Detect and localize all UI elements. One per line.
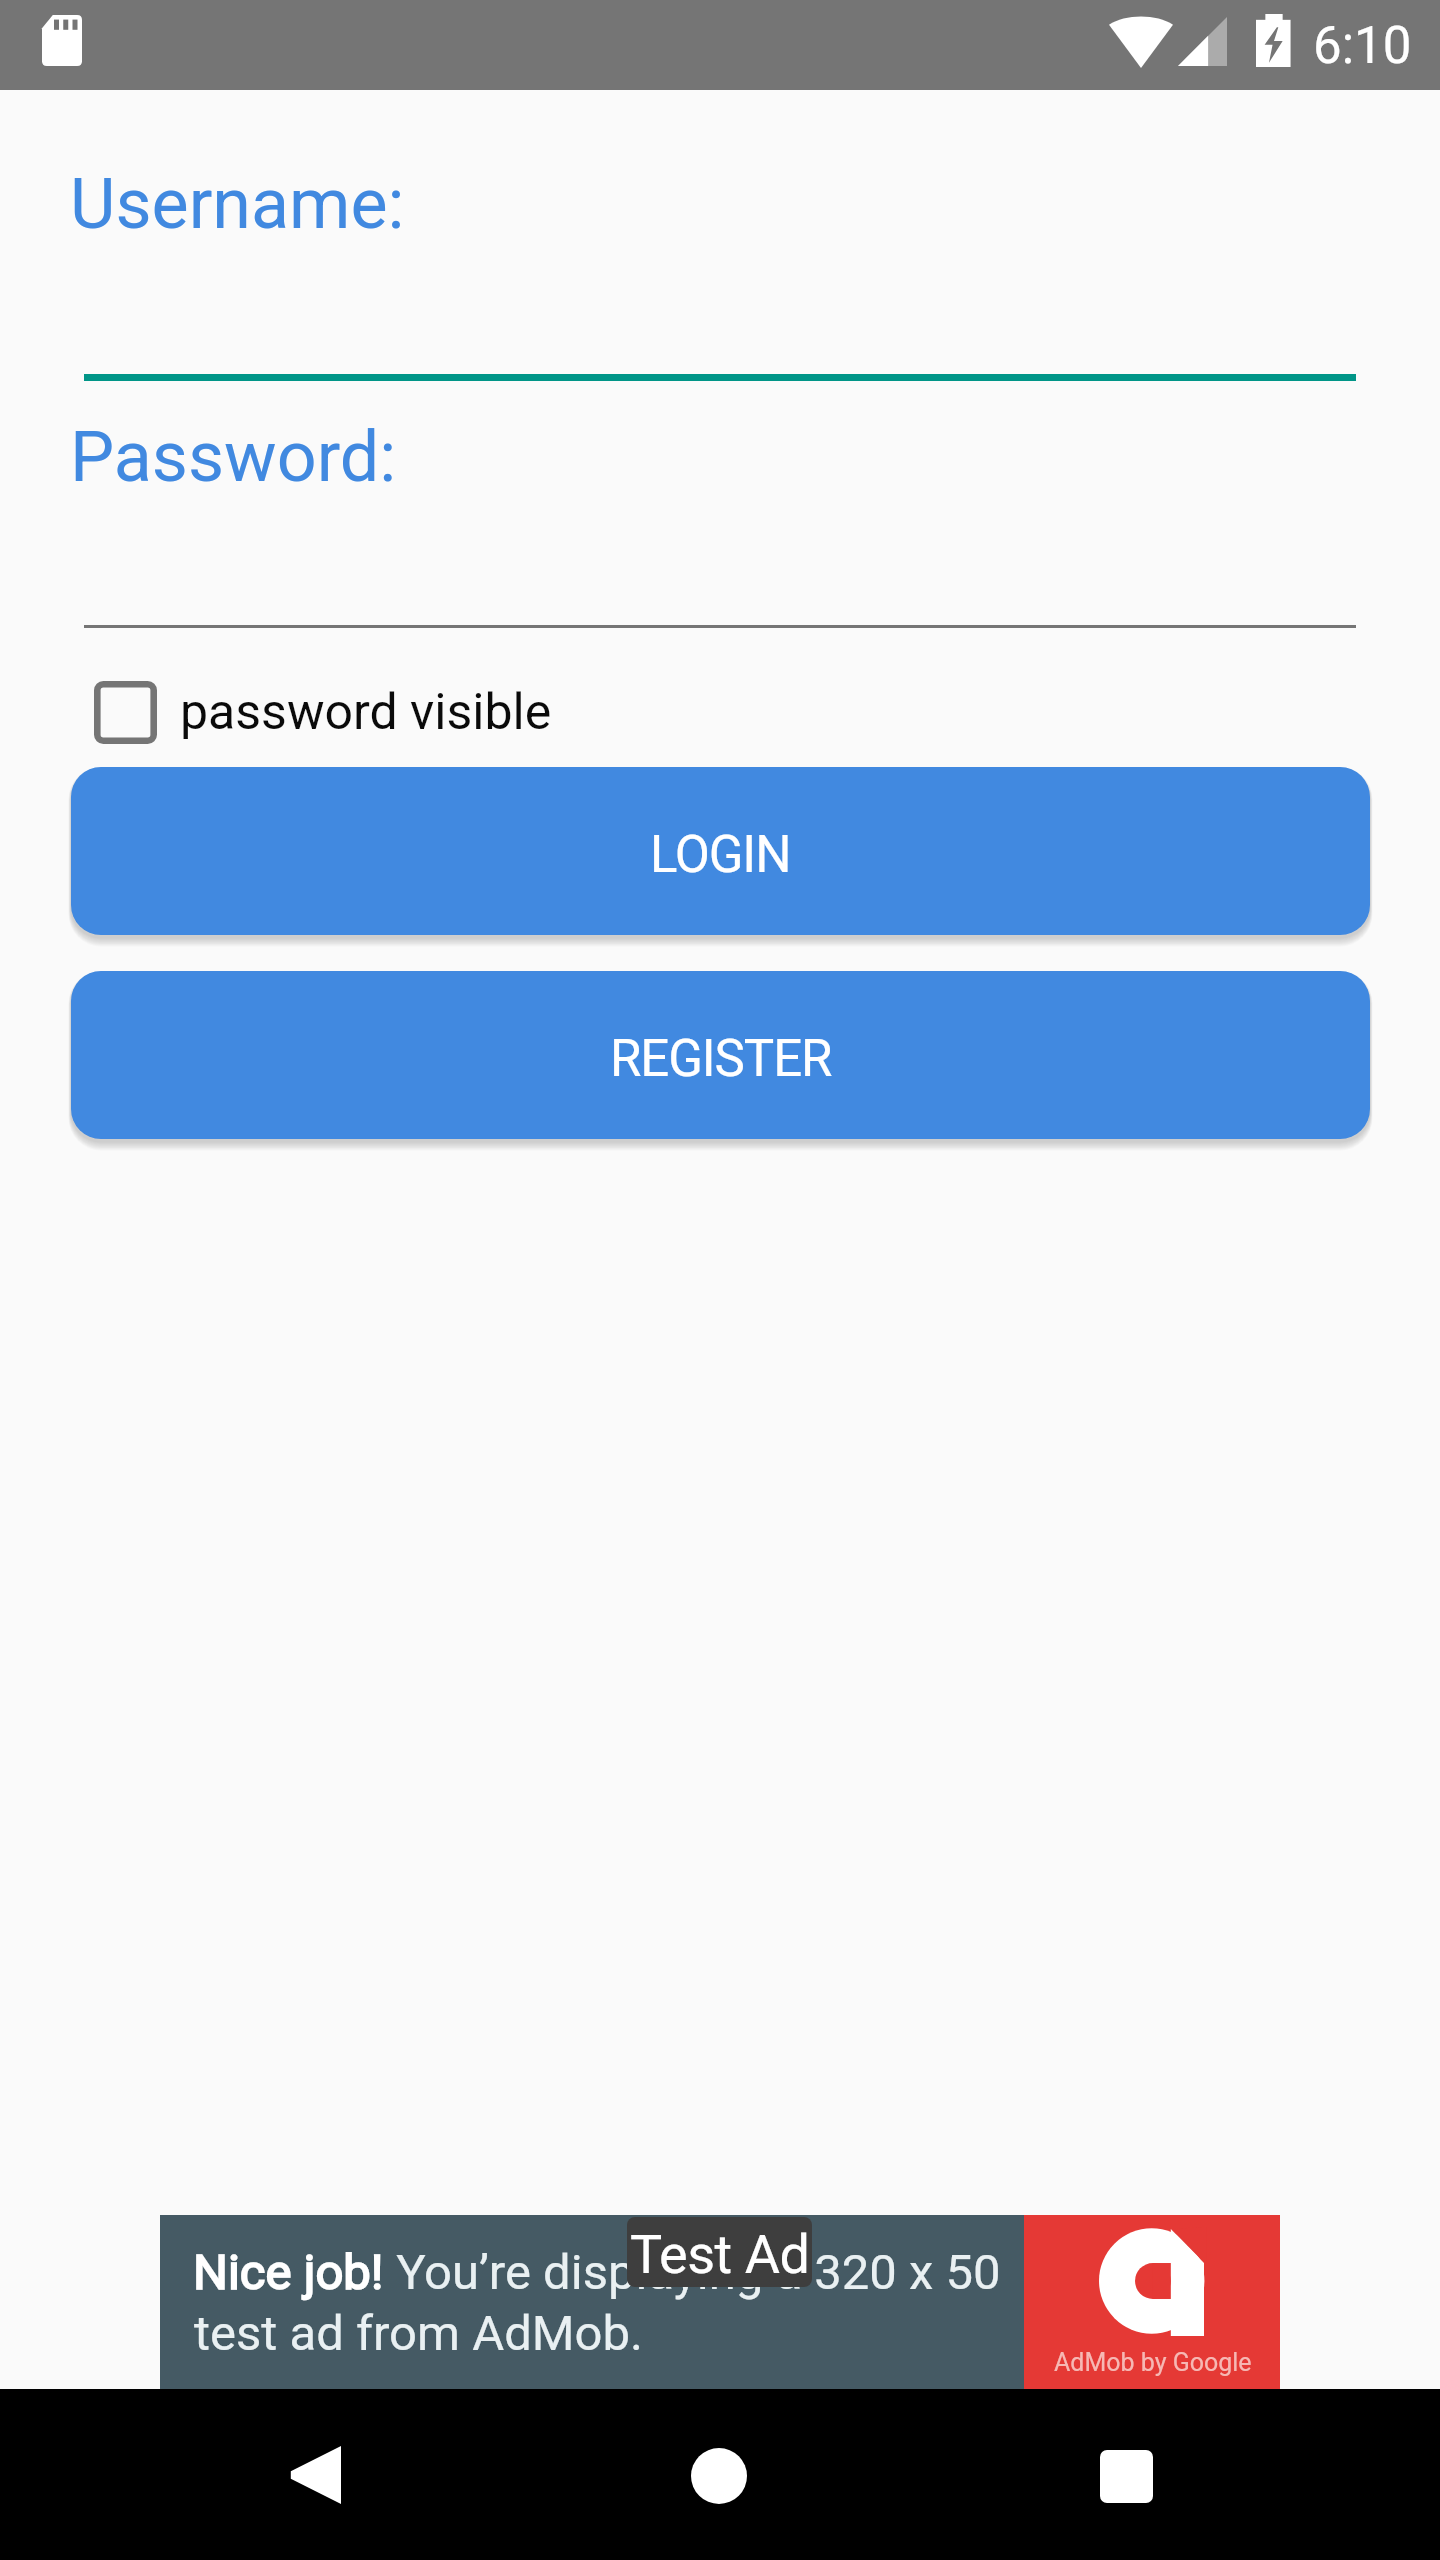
button[interactable]: LOGIN (71, 767, 1370, 935)
staticText: You’re displaying a 320 x 50 (384, 2244, 1001, 2301)
staticText: password visible (180, 683, 552, 742)
staticText: 6:10 (1313, 16, 1412, 76)
button[interactable]: Nice job! (160, 2215, 1280, 2389)
staticText: Password: (70, 416, 397, 498)
staticText: Test Ad (630, 2223, 810, 2286)
button[interactable]: Recents (1036, 2389, 1216, 2560)
staticText: test ad from AdMob. (194, 2305, 643, 2362)
staticText: Nice job! (193, 2244, 384, 2301)
staticText: REGISTER (610, 1029, 832, 1089)
staticText: LOGIN (650, 825, 791, 885)
staticText: AdMob by Google (1054, 2348, 1252, 2377)
button[interactable]: REGISTER (71, 971, 1370, 1139)
button[interactable]: password visible (0, 660, 1440, 764)
staticText: Username: (70, 163, 405, 245)
button[interactable]: Back (225, 2389, 405, 2560)
button[interactable]: Home (629, 2389, 809, 2560)
